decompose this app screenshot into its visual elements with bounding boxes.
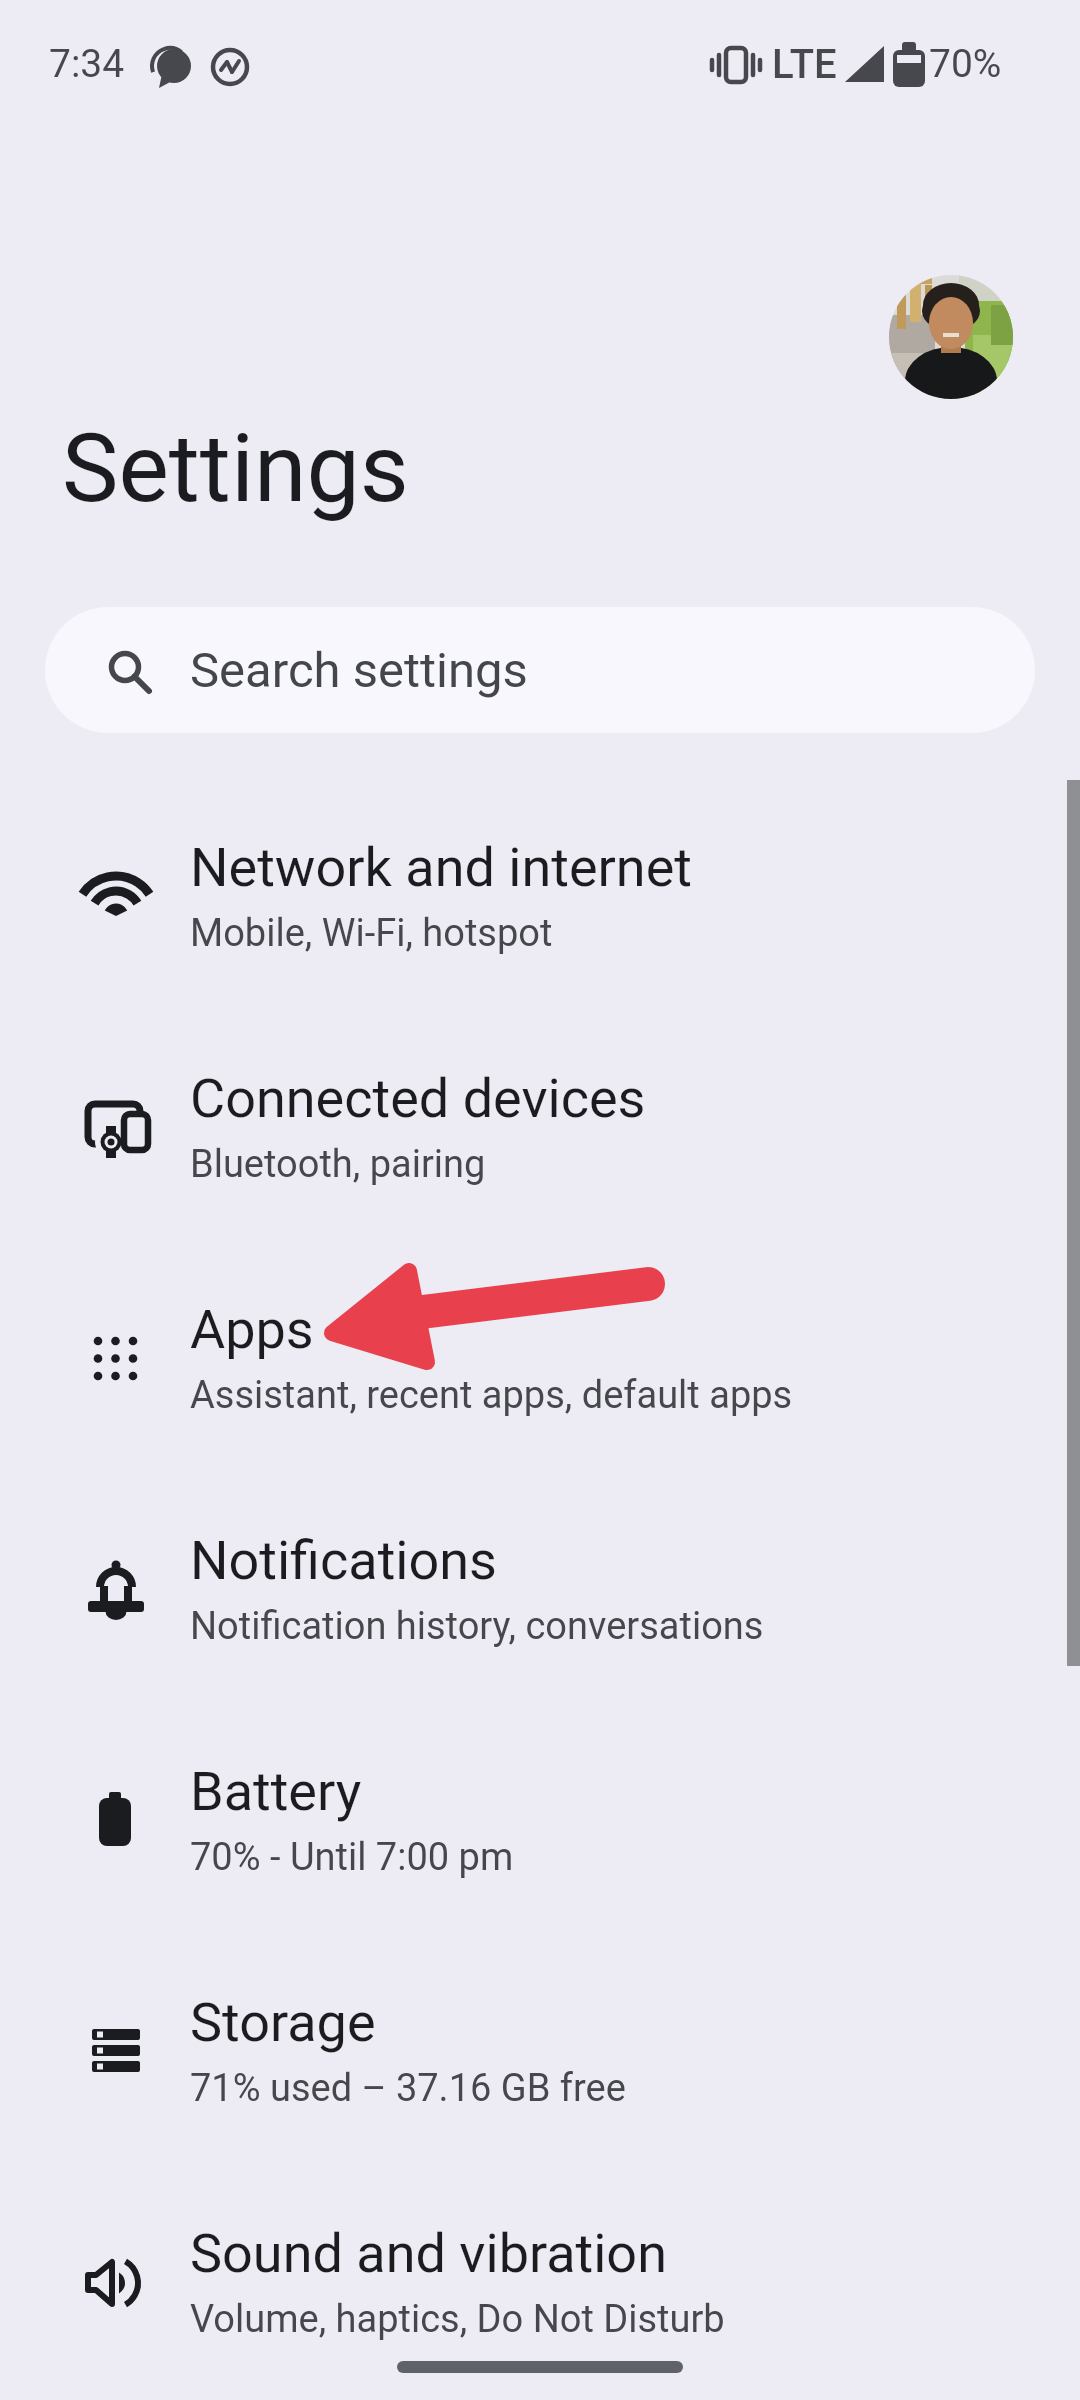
staticText: 7:34 [49, 41, 125, 87]
staticText: Bluetooth, pairing [190, 1142, 486, 1187]
staticText: Apps [190, 1298, 314, 1361]
button[interactable]: Network and internet [0, 780, 1080, 1011]
staticText: Network and internet [190, 836, 692, 899]
staticText: Assistant, recent apps, default apps [190, 1373, 793, 1418]
staticText: 71% used – 37.16 GB free [190, 2066, 626, 2111]
staticText: Battery [190, 1760, 362, 1823]
staticText: 70% [929, 41, 1002, 87]
button[interactable]: Notifications [0, 1473, 1080, 1704]
staticText: Mobile, Wi-Fi, hotspot [190, 911, 553, 956]
staticText: Search settings [190, 642, 528, 699]
staticText: Storage [190, 1991, 376, 2054]
staticText: Sound and vibration [190, 2222, 667, 2285]
staticText: Settings [62, 413, 409, 524]
button[interactable]: Storage [0, 1935, 1080, 2166]
staticText: Connected devices [190, 1067, 646, 1130]
button[interactable]: Connected devices [0, 1011, 1080, 1242]
staticText: Volume, haptics, Do Not Disturb [190, 2297, 725, 2342]
button[interactable]: Apps [0, 1242, 1080, 1473]
button[interactable]: Battery [0, 1704, 1080, 1935]
staticText: Notifications [190, 1529, 497, 1592]
button[interactable]: Search settings [45, 607, 1035, 733]
button[interactable]: Sound and vibration [0, 2166, 1080, 2397]
button[interactable] [889, 275, 1013, 399]
staticText: Notification history, conversations [190, 1604, 764, 1649]
staticText: LTE [772, 41, 837, 88]
staticText: 70% - Until 7:00 pm [190, 1835, 514, 1880]
